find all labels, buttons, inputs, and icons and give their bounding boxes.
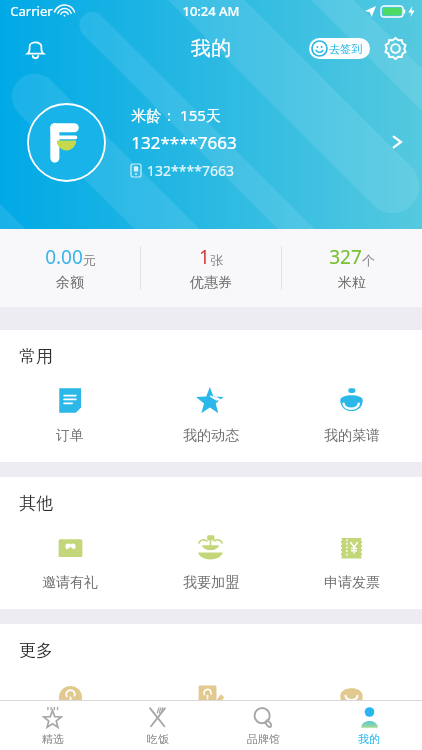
button[interactable]: 327 xyxy=(282,229,422,307)
staticText: 132****7663 xyxy=(131,131,237,154)
staticText: 余额 xyxy=(56,274,84,292)
button[interactable]: 我的 xyxy=(316,701,422,750)
staticText: 我的 xyxy=(358,732,380,746)
button[interactable]: Notifications xyxy=(18,31,52,65)
staticText: 优惠券 xyxy=(190,274,232,292)
button[interactable]: 我的动态 xyxy=(140,385,281,445)
staticText: Carrier xyxy=(10,2,53,20)
button[interactable]: 申请发票 xyxy=(281,532,422,592)
staticText: 个 xyxy=(362,252,375,268)
button[interactable]: 我要加盟 xyxy=(140,532,281,592)
staticText: 常用 xyxy=(19,346,53,367)
staticText: 邀请有礼 xyxy=(42,574,98,592)
staticText: 10:24 AM xyxy=(182,2,240,20)
button[interactable]: Settings xyxy=(378,31,412,65)
button[interactable]: 吃饭 xyxy=(105,701,210,750)
staticText: 订单 xyxy=(56,427,84,445)
staticText: 132****7663 xyxy=(147,161,234,180)
staticText: 327 xyxy=(329,244,362,270)
staticText: 其他 xyxy=(19,493,53,514)
button[interactable]: 0.00 xyxy=(0,229,140,307)
staticText: 我的菜谱 xyxy=(324,427,380,445)
staticText: 申请发票 xyxy=(324,574,380,592)
staticText: 品牌馆 xyxy=(247,732,280,746)
button[interactable]: 品牌馆 xyxy=(210,701,316,750)
staticText: 去签到 xyxy=(329,42,362,56)
button[interactable]: 去签到 xyxy=(312,38,362,59)
staticText: 0.00 xyxy=(45,244,83,270)
staticText: 更多 xyxy=(19,640,53,661)
staticText: 张 xyxy=(210,252,223,268)
button[interactable]: 精选 xyxy=(0,701,105,750)
staticText: 米龄： 155天 xyxy=(131,105,221,125)
button[interactable]: 我的菜谱 xyxy=(281,385,422,445)
button[interactable]: More item 2 xyxy=(140,681,281,714)
button[interactable]: More item 3 xyxy=(281,681,422,714)
button[interactable]: 订单 xyxy=(0,385,140,445)
staticText: 我的 xyxy=(191,36,231,61)
staticText: 我要加盟 xyxy=(183,574,239,592)
staticText: 1 xyxy=(199,244,210,270)
staticText: 吃饭 xyxy=(147,732,169,746)
staticText: 我的动态 xyxy=(183,427,239,445)
staticText: 米粒 xyxy=(338,274,366,292)
button[interactable]: 邀请有礼 xyxy=(0,532,140,592)
staticText: 元 xyxy=(83,252,96,268)
staticText: 精选 xyxy=(42,732,64,746)
button[interactable]: More item 1 xyxy=(0,681,140,714)
button[interactable]: 1 xyxy=(141,229,281,307)
button[interactable]: 米龄： 155天 xyxy=(0,82,422,202)
